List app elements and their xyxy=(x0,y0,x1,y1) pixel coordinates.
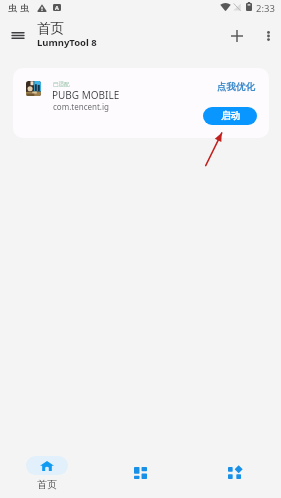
staticText: 2:33 xyxy=(256,2,275,15)
staticText: 首页 xyxy=(37,20,64,37)
staticText: 点我优化 xyxy=(217,81,255,93)
staticText: A xyxy=(55,4,59,11)
button[interactable]: 已适配 xyxy=(13,68,269,138)
staticText: PUBG MOBILE xyxy=(52,88,120,102)
button[interactable]: 首页 xyxy=(0,439,93,498)
staticText: com.tencent.ig xyxy=(53,101,109,112)
button[interactable]: 启动 xyxy=(203,107,257,125)
staticText: 启动 xyxy=(221,110,240,122)
staticText: 虫 xyxy=(8,3,17,14)
button[interactable]: Add xyxy=(223,22,251,50)
staticText: LumnyTool 8 xyxy=(37,36,97,49)
button[interactable]: Apps xyxy=(93,439,187,498)
staticText: 首页 xyxy=(37,478,57,491)
button[interactable]: More options xyxy=(254,22,281,50)
button[interactable]: Modules xyxy=(187,439,281,498)
button[interactable]: Menu xyxy=(5,22,31,48)
staticText: 已适配 xyxy=(53,81,70,88)
staticText: 虫 xyxy=(20,3,29,14)
